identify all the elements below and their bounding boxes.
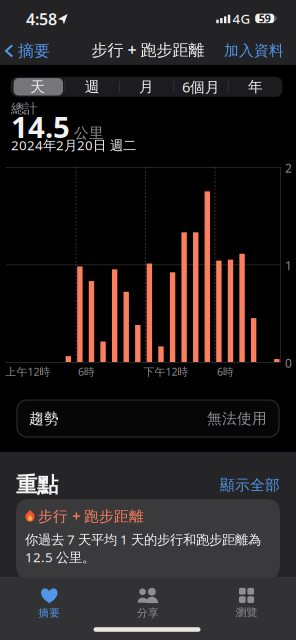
staticText: 59: [259, 11, 271, 25]
staticText: 年: [248, 78, 263, 96]
button[interactable]: 步行 + 跑步距離: [16, 499, 280, 579]
staticText: 6時: [78, 364, 95, 379]
staticText: 下午12時: [143, 364, 188, 379]
staticText: 6個月: [182, 77, 220, 97]
staticText: 步行 + 跑步距離: [91, 39, 204, 60]
button[interactable]: 摘要: [0, 33, 56, 69]
staticText: 4G: [232, 10, 250, 27]
staticText: 上午12時: [5, 364, 50, 379]
staticText: 天: [30, 78, 45, 96]
button[interactable]: 年: [228, 77, 283, 97]
staticText: 14.5: [11, 107, 70, 146]
staticText: 分享: [137, 606, 159, 619]
staticText: 重點: [16, 472, 58, 498]
button[interactable]: 天: [11, 77, 65, 97]
button[interactable]: 分享: [99, 582, 197, 624]
button[interactable]: 週: [65, 77, 119, 97]
staticText: 0: [285, 355, 292, 371]
staticText: 瀏覽: [235, 606, 257, 619]
staticText: 2: [285, 160, 292, 176]
staticText: 4:58: [26, 8, 57, 30]
button[interactable]: 加入資料: [216, 33, 292, 67]
button[interactable]: 顯示全部: [220, 472, 280, 498]
staticText: 摘要: [18, 41, 50, 61]
button[interactable]: 趨勢: [17, 400, 279, 437]
button[interactable]: 月: [119, 77, 174, 97]
staticText: 總計: [11, 100, 37, 117]
staticText: 週: [85, 78, 100, 96]
staticText: 你過去 7 天平均 1 天的步行和跑步距離為 12.5 公里。: [25, 530, 261, 566]
staticText: 摘要: [38, 606, 60, 619]
staticText: 加入資料: [224, 41, 284, 59]
staticText: 公里: [74, 124, 104, 142]
button[interactable]: 瀏覽: [197, 582, 296, 624]
staticText: 步行 + 跑步距離: [38, 506, 144, 525]
button[interactable]: 6個月: [174, 77, 228, 97]
staticText: 趨勢: [29, 409, 59, 427]
staticText: 無法使用: [207, 409, 267, 427]
button[interactable]: 摘要: [0, 582, 99, 624]
staticText: 2024年2月20日 週二: [11, 136, 136, 154]
staticText: 顯示全部: [220, 476, 280, 494]
staticText: 月: [139, 78, 154, 96]
staticText: 6時: [217, 364, 234, 379]
staticText: 1: [285, 257, 292, 273]
